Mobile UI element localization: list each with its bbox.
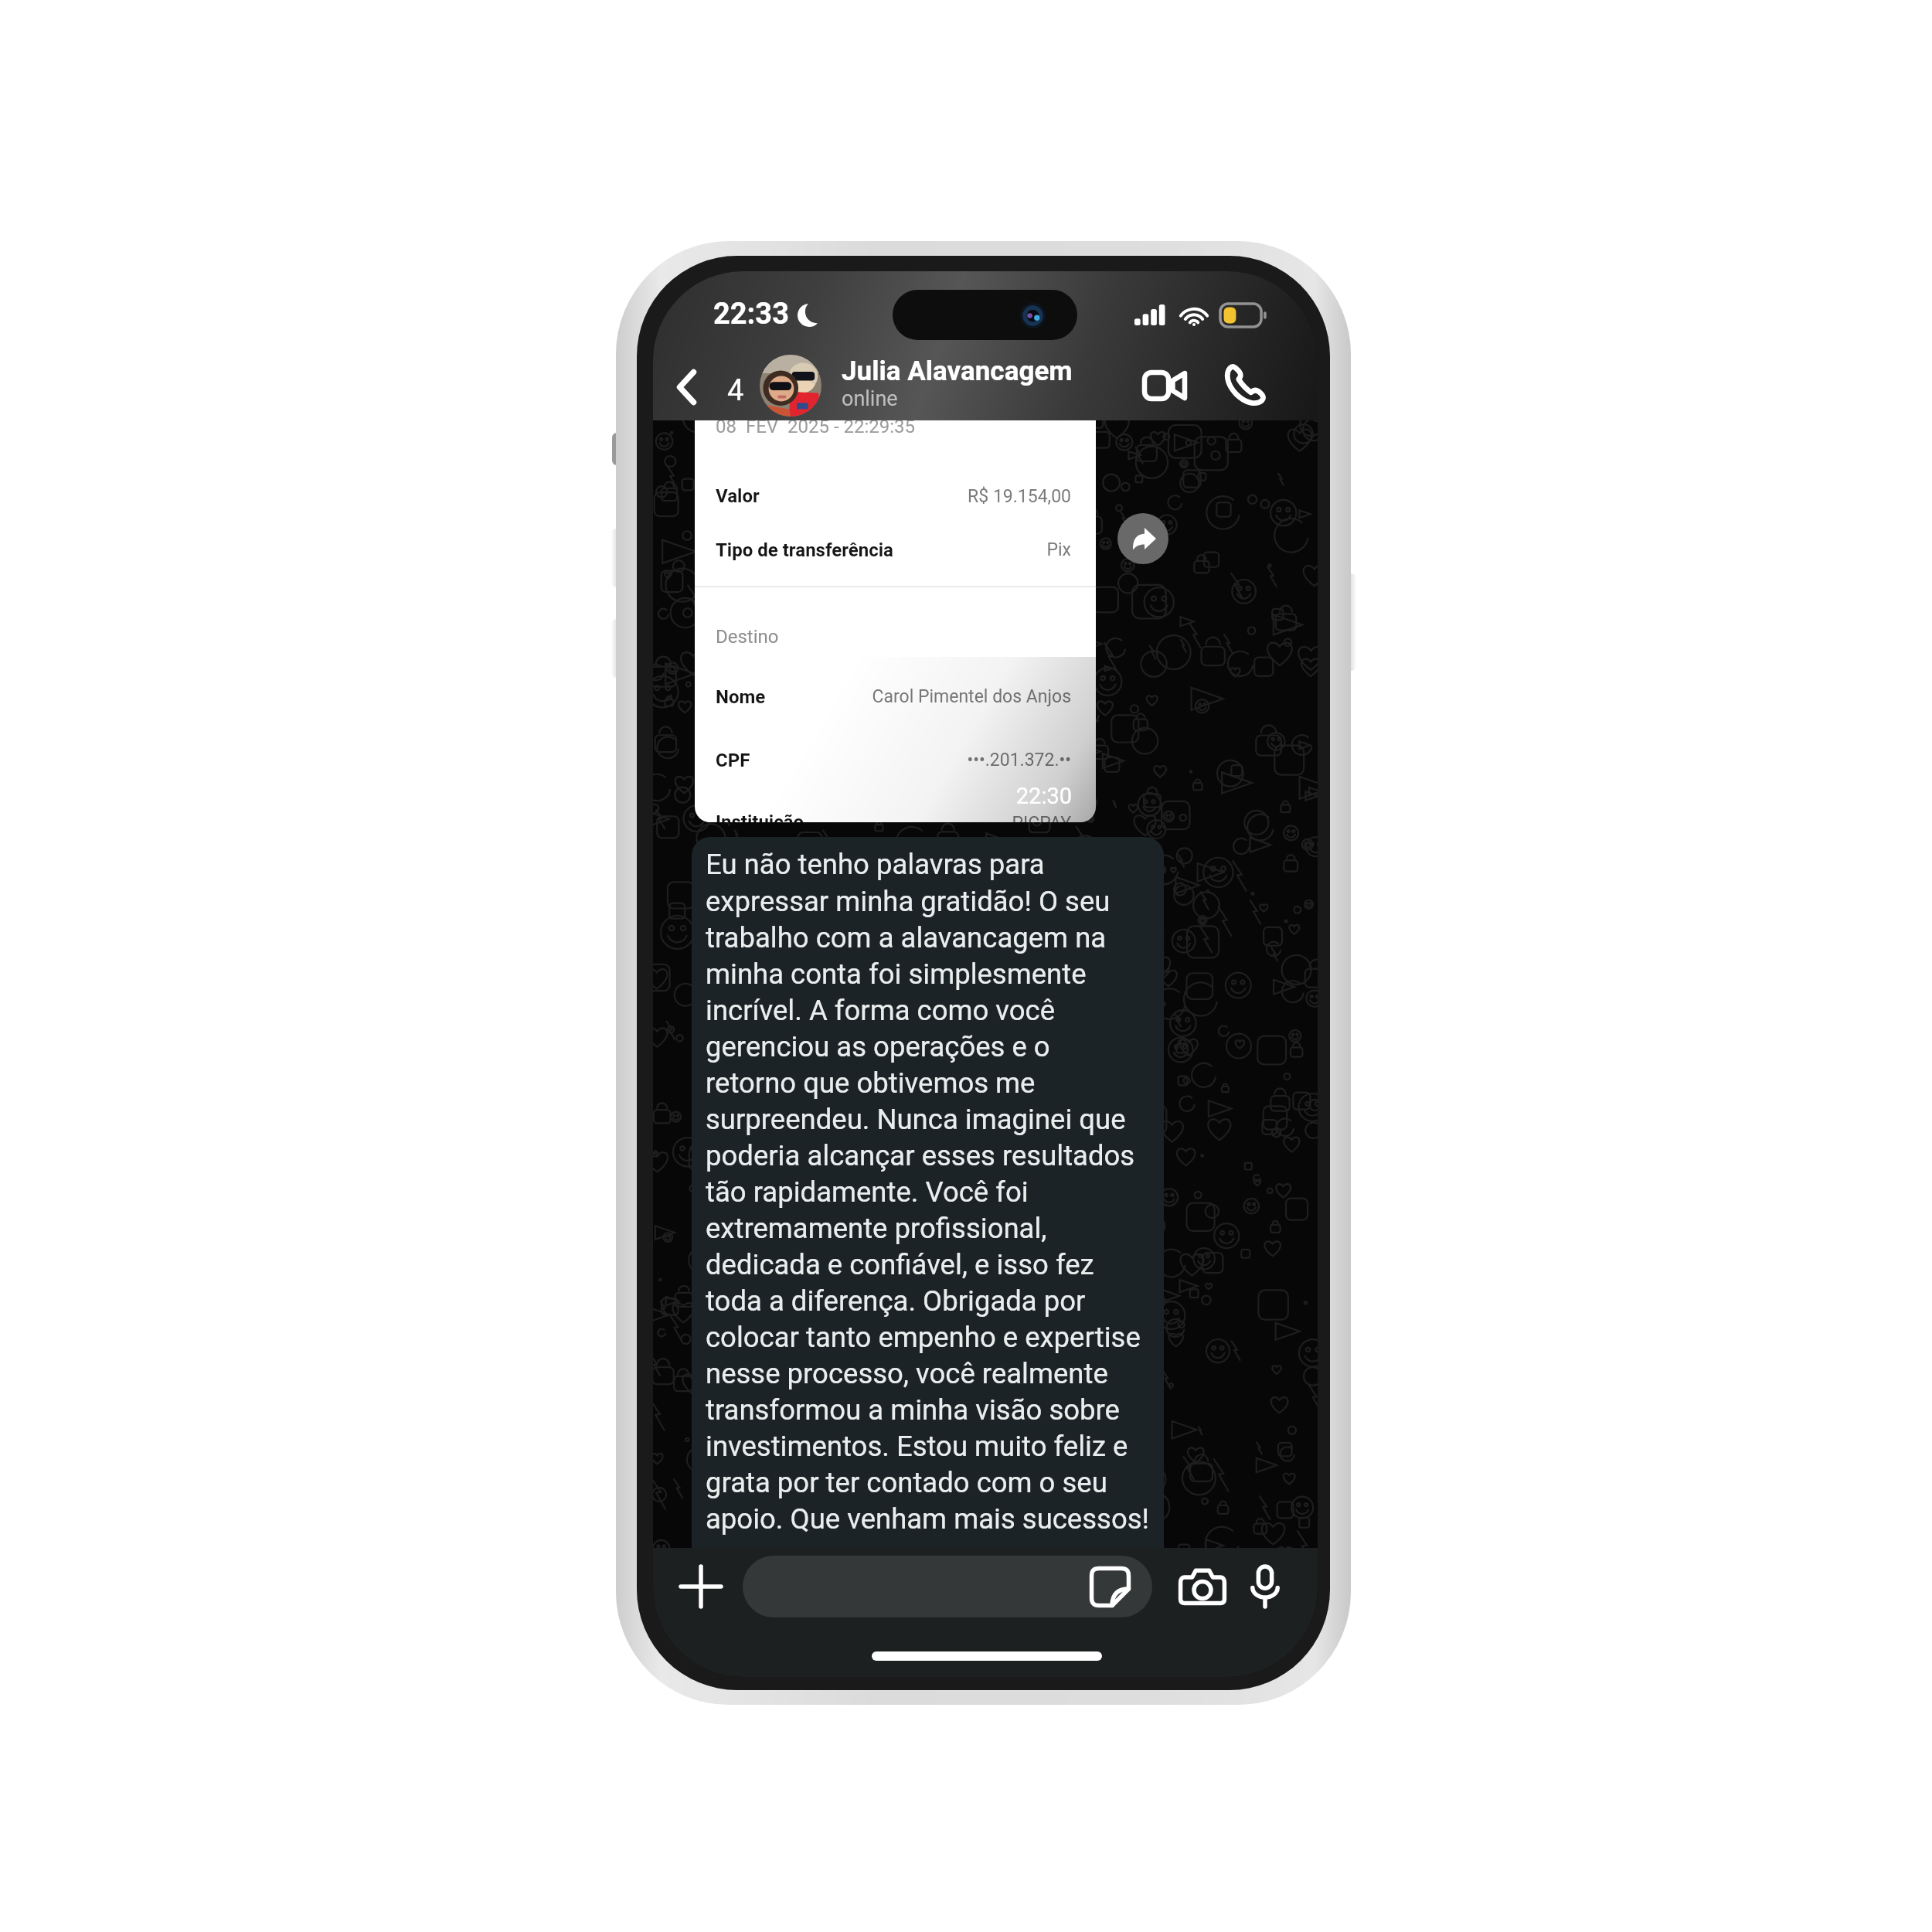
staticText: Nome — [716, 686, 766, 708]
staticText: Destino — [716, 626, 779, 648]
button[interactable]: Julia Alavancagem — [760, 353, 1073, 418]
staticText: PICPAY — [889, 813, 1071, 822]
button[interactable]: Message — [743, 1556, 1152, 1617]
staticText: Instituição — [716, 811, 804, 822]
button[interactable]: Attach — [675, 1561, 726, 1612]
staticText: Tipo de transferência — [716, 539, 893, 561]
button[interactable]: Video call — [1132, 353, 1197, 418]
staticText: 22:33 — [713, 297, 789, 332]
staticText: Carol Pimentel dos Anjos — [819, 686, 1071, 707]
button[interactable]: Forward — [1117, 513, 1168, 564]
staticText: 4 — [727, 373, 744, 408]
staticText: 08 FEV 2025 - 22:29:35 — [716, 416, 916, 437]
button[interactable]: Stickers — [1090, 1567, 1130, 1607]
staticText: 22:30 — [958, 783, 1072, 809]
button[interactable]: Voice call — [1213, 353, 1277, 418]
staticText: online — [842, 386, 898, 411]
button[interactable]: Eu não tenho palavras para expressar min… — [692, 837, 1164, 1579]
staticText: Valor — [716, 485, 760, 507]
staticText: Julia Alavancagem — [842, 355, 1073, 387]
staticText: •••.201.372.•• — [889, 750, 1071, 770]
button[interactable]: Camera — [1177, 1561, 1228, 1612]
staticText: Pix — [850, 539, 1071, 560]
button[interactable]: Back — [673, 360, 736, 416]
staticText: Eu não tenho palavras para expressar min… — [706, 848, 1164, 1536]
staticText: CPF — [716, 750, 750, 771]
button[interactable]: Voice message — [1240, 1561, 1291, 1612]
button[interactable]: 08 FEV 2025 - 22:29:35 — [695, 386, 1096, 822]
staticText: R$ 19.154,00 — [850, 486, 1071, 507]
